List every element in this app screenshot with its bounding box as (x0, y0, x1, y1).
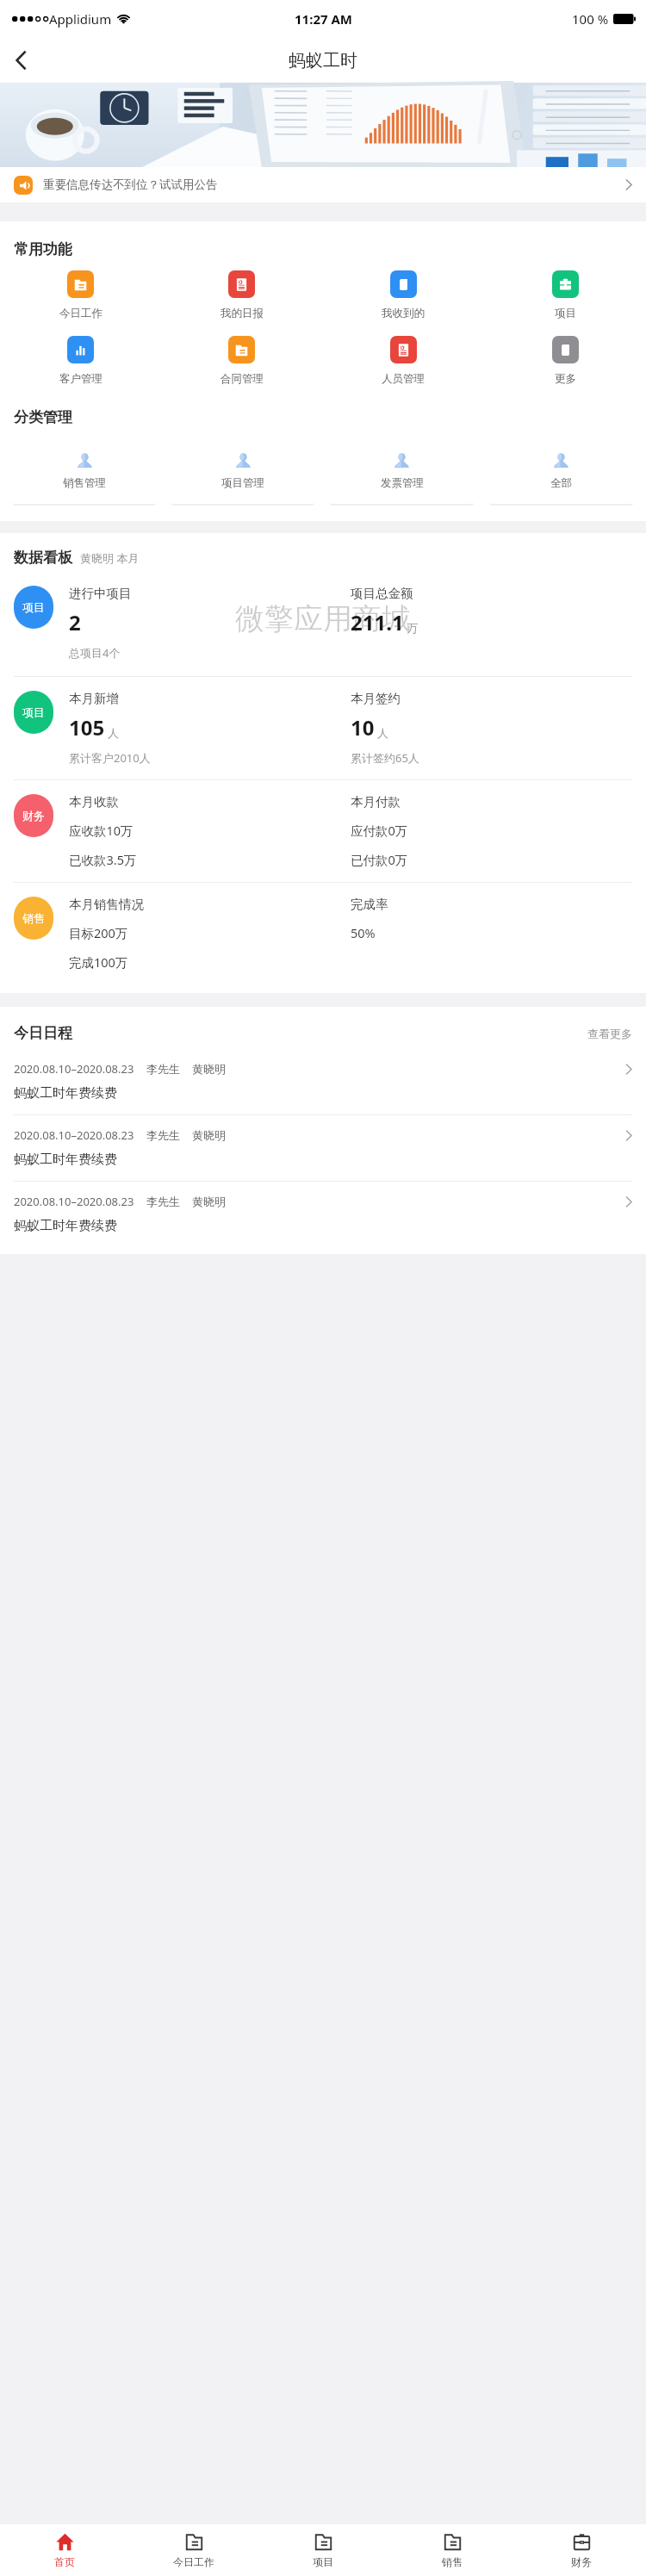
button[interactable]: 项目 (0, 572, 646, 676)
staticText: 万 (407, 621, 418, 635)
staticText: 蚂蚁工时年费续费 (14, 1218, 117, 1234)
staticText: 黄晓明 本月 (80, 550, 140, 566)
staticText: 查看更多 (587, 1027, 632, 1040)
staticText: 本月签约 (351, 691, 632, 706)
staticText: 黄晓明 (192, 1195, 226, 1208)
button[interactable]: 2020.08.10–2020.08.23 (0, 1115, 646, 1182)
staticText: 应付款0万 (351, 822, 408, 839)
staticText: 微擎应用商城 (235, 600, 411, 637)
staticText: 销售管理 (63, 476, 106, 490)
button[interactable]: 今日工作 (129, 2524, 258, 2576)
button[interactable]: 全部 (486, 438, 637, 504)
staticText: 50% (351, 924, 376, 941)
staticText: 李先生 (146, 1195, 180, 1208)
button[interactable]: 发票管理 (326, 438, 477, 504)
staticText: 总项目4个 (69, 645, 351, 661)
button[interactable]: 财务 (517, 2524, 646, 2576)
button[interactable]: 人员管理 (322, 334, 484, 388)
staticText: 项目总金额 (351, 586, 632, 601)
staticText: 本月销售情况 (69, 897, 351, 912)
staticText: 我的日报 (221, 307, 264, 320)
staticText: 全部 (550, 476, 572, 490)
staticText: 黄晓明 (192, 1128, 226, 1142)
staticText: 蚂蚁工时年费续费 (14, 1085, 117, 1102)
staticText: 目标200万 (69, 924, 128, 941)
staticText: 2020.08.10–2020.08.23 (14, 1061, 134, 1077)
staticText: 人 (377, 726, 388, 740)
staticText: 完成率 (351, 897, 632, 912)
staticText: 今日工作 (173, 2555, 214, 2568)
staticText: 211.1 (351, 608, 404, 636)
staticText: 本月付款 (351, 794, 632, 810)
staticText: 销售 (442, 2555, 463, 2568)
staticText: 完成100万 (69, 953, 351, 971)
staticText: 蚂蚁工时 (289, 50, 357, 71)
staticText: 100 % (572, 10, 609, 28)
button[interactable]: 销售 (388, 2524, 517, 2576)
staticText: 常用功能 (14, 240, 72, 258)
staticText: 我收到的 (382, 307, 425, 320)
button[interactable]: 销售 (0, 883, 646, 984)
staticText: 分类管理 (14, 408, 72, 426)
staticText: 本月收款 (69, 794, 351, 810)
button[interactable]: 2020.08.10–2020.08.23 (0, 1182, 646, 1247)
button[interactable]: Banner (0, 83, 646, 167)
staticText: 应收款10万 (69, 822, 134, 839)
staticText: 项目 (313, 2555, 333, 2568)
button[interactable]: 财务 (0, 780, 646, 882)
staticText: 项目管理 (221, 476, 264, 490)
staticText: 10 (351, 713, 375, 742)
staticText: 李先生 (146, 1128, 180, 1142)
staticText: 发票管理 (381, 476, 424, 490)
button[interactable]: 2020.08.10–2020.08.23 (0, 1049, 646, 1115)
staticText: 11:27 AM (295, 10, 352, 28)
staticText: 已收款3.5万 (69, 851, 351, 868)
button[interactable]: 项目 (484, 269, 646, 322)
staticText: 累计签约65人 (351, 750, 632, 766)
button[interactable]: 项目 (0, 677, 646, 779)
staticText: 项目 (22, 600, 45, 614)
staticText: 今日日程 (14, 1024, 72, 1042)
staticText: 今日工作 (59, 307, 102, 320)
staticText: 105 (69, 713, 105, 742)
staticText: 黄晓明 (192, 1062, 226, 1076)
button[interactable]: 销售管理 (9, 438, 159, 504)
staticText: 进行中项目 (69, 586, 351, 601)
staticText: 2 (69, 608, 81, 636)
staticText: 蚂蚁工时年费续费 (14, 1151, 117, 1168)
staticText: 合同管理 (221, 372, 264, 386)
button[interactable]: 我收到的 (322, 269, 484, 322)
button[interactable]: 更多 (484, 334, 646, 388)
button[interactable]: Back (0, 40, 41, 81)
staticText: 项目 (22, 705, 45, 719)
button[interactable]: 重要信息传达不到位？试试用公告 (0, 167, 646, 202)
staticText: 人员管理 (382, 372, 425, 386)
button[interactable]: 我的日报 (161, 269, 322, 322)
button[interactable]: 项目管理 (168, 438, 318, 504)
button[interactable]: 首页 (0, 2524, 129, 2576)
staticText: 2020.08.10–2020.08.23 (14, 1194, 134, 1209)
staticText: 客户管理 (59, 372, 102, 386)
staticText: Applidium (49, 10, 112, 28)
staticText: 2020.08.10–2020.08.23 (14, 1127, 134, 1143)
button[interactable]: 项目 (258, 2524, 388, 2576)
staticText: 首页 (54, 2555, 75, 2568)
staticText: 已付款0万 (351, 851, 632, 868)
staticText: 销售 (22, 911, 45, 925)
staticText: 数据看板 (14, 549, 72, 567)
staticText: 财务 (22, 809, 45, 822)
staticText: 累计客户2010人 (69, 750, 351, 766)
button[interactable]: 合同管理 (161, 334, 322, 388)
staticText: 重要信息传达不到位？试试用公告 (43, 177, 218, 192)
staticText: 人 (108, 726, 119, 740)
button[interactable]: 今日工作 (0, 269, 161, 322)
button[interactable]: 客户管理 (0, 334, 161, 388)
staticText: 项目 (555, 307, 576, 320)
staticText: 更多 (555, 372, 576, 386)
staticText: 财务 (571, 2555, 592, 2568)
staticText: 李先生 (146, 1062, 180, 1076)
button[interactable]: 查看更多 (587, 1027, 632, 1040)
staticText: 本月新增 (69, 691, 351, 706)
